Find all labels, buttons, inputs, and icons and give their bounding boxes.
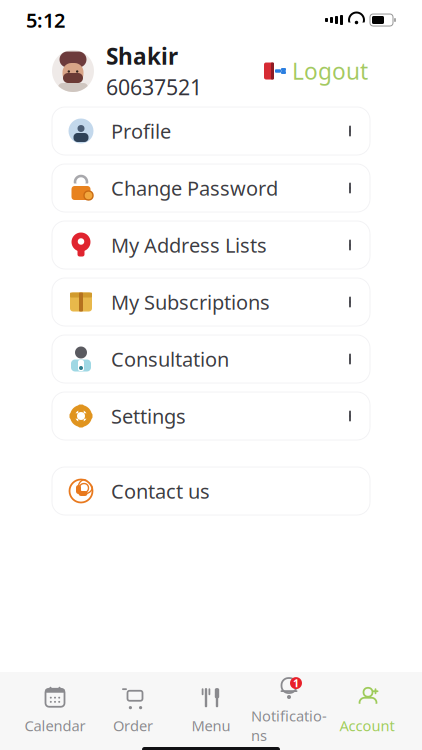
button[interactable]: Account [328, 684, 406, 737]
staticText: Contact us [111, 478, 210, 504]
staticText: Menu [191, 716, 230, 735]
button[interactable]: Calendar [16, 684, 94, 737]
button[interactable]: Settings [52, 392, 370, 440]
staticText: Change Password [111, 175, 278, 201]
button[interactable]: Profile [52, 107, 370, 155]
button[interactable]: Order [94, 684, 172, 737]
button[interactable]: My Address Lists [52, 221, 370, 269]
staticText: Consultation [111, 346, 229, 372]
button[interactable]: Menu [172, 684, 250, 737]
staticText: My Address Lists [111, 232, 267, 258]
staticText: 1 [293, 676, 299, 690]
staticText: 60637521 [106, 73, 202, 101]
staticText: 5:12 [26, 7, 65, 33]
staticText: Settings [111, 403, 186, 429]
staticText: Notifications [251, 706, 327, 745]
button[interactable]: Change Password [52, 164, 370, 212]
staticText: Shakir [106, 41, 178, 71]
staticText: Calendar [24, 716, 85, 735]
button[interactable]: My Subscriptions [52, 278, 370, 326]
button[interactable]: Logout [262, 50, 370, 92]
button[interactable]: 1 [250, 674, 328, 747]
staticText: My Subscriptions [111, 289, 270, 315]
staticText: Profile [111, 118, 171, 144]
button[interactable]: Consultation [52, 335, 370, 383]
staticText: Logout [292, 56, 368, 86]
staticText: Order [113, 716, 153, 735]
button[interactable]: Contact us [52, 467, 370, 515]
staticText: Account [339, 716, 394, 735]
